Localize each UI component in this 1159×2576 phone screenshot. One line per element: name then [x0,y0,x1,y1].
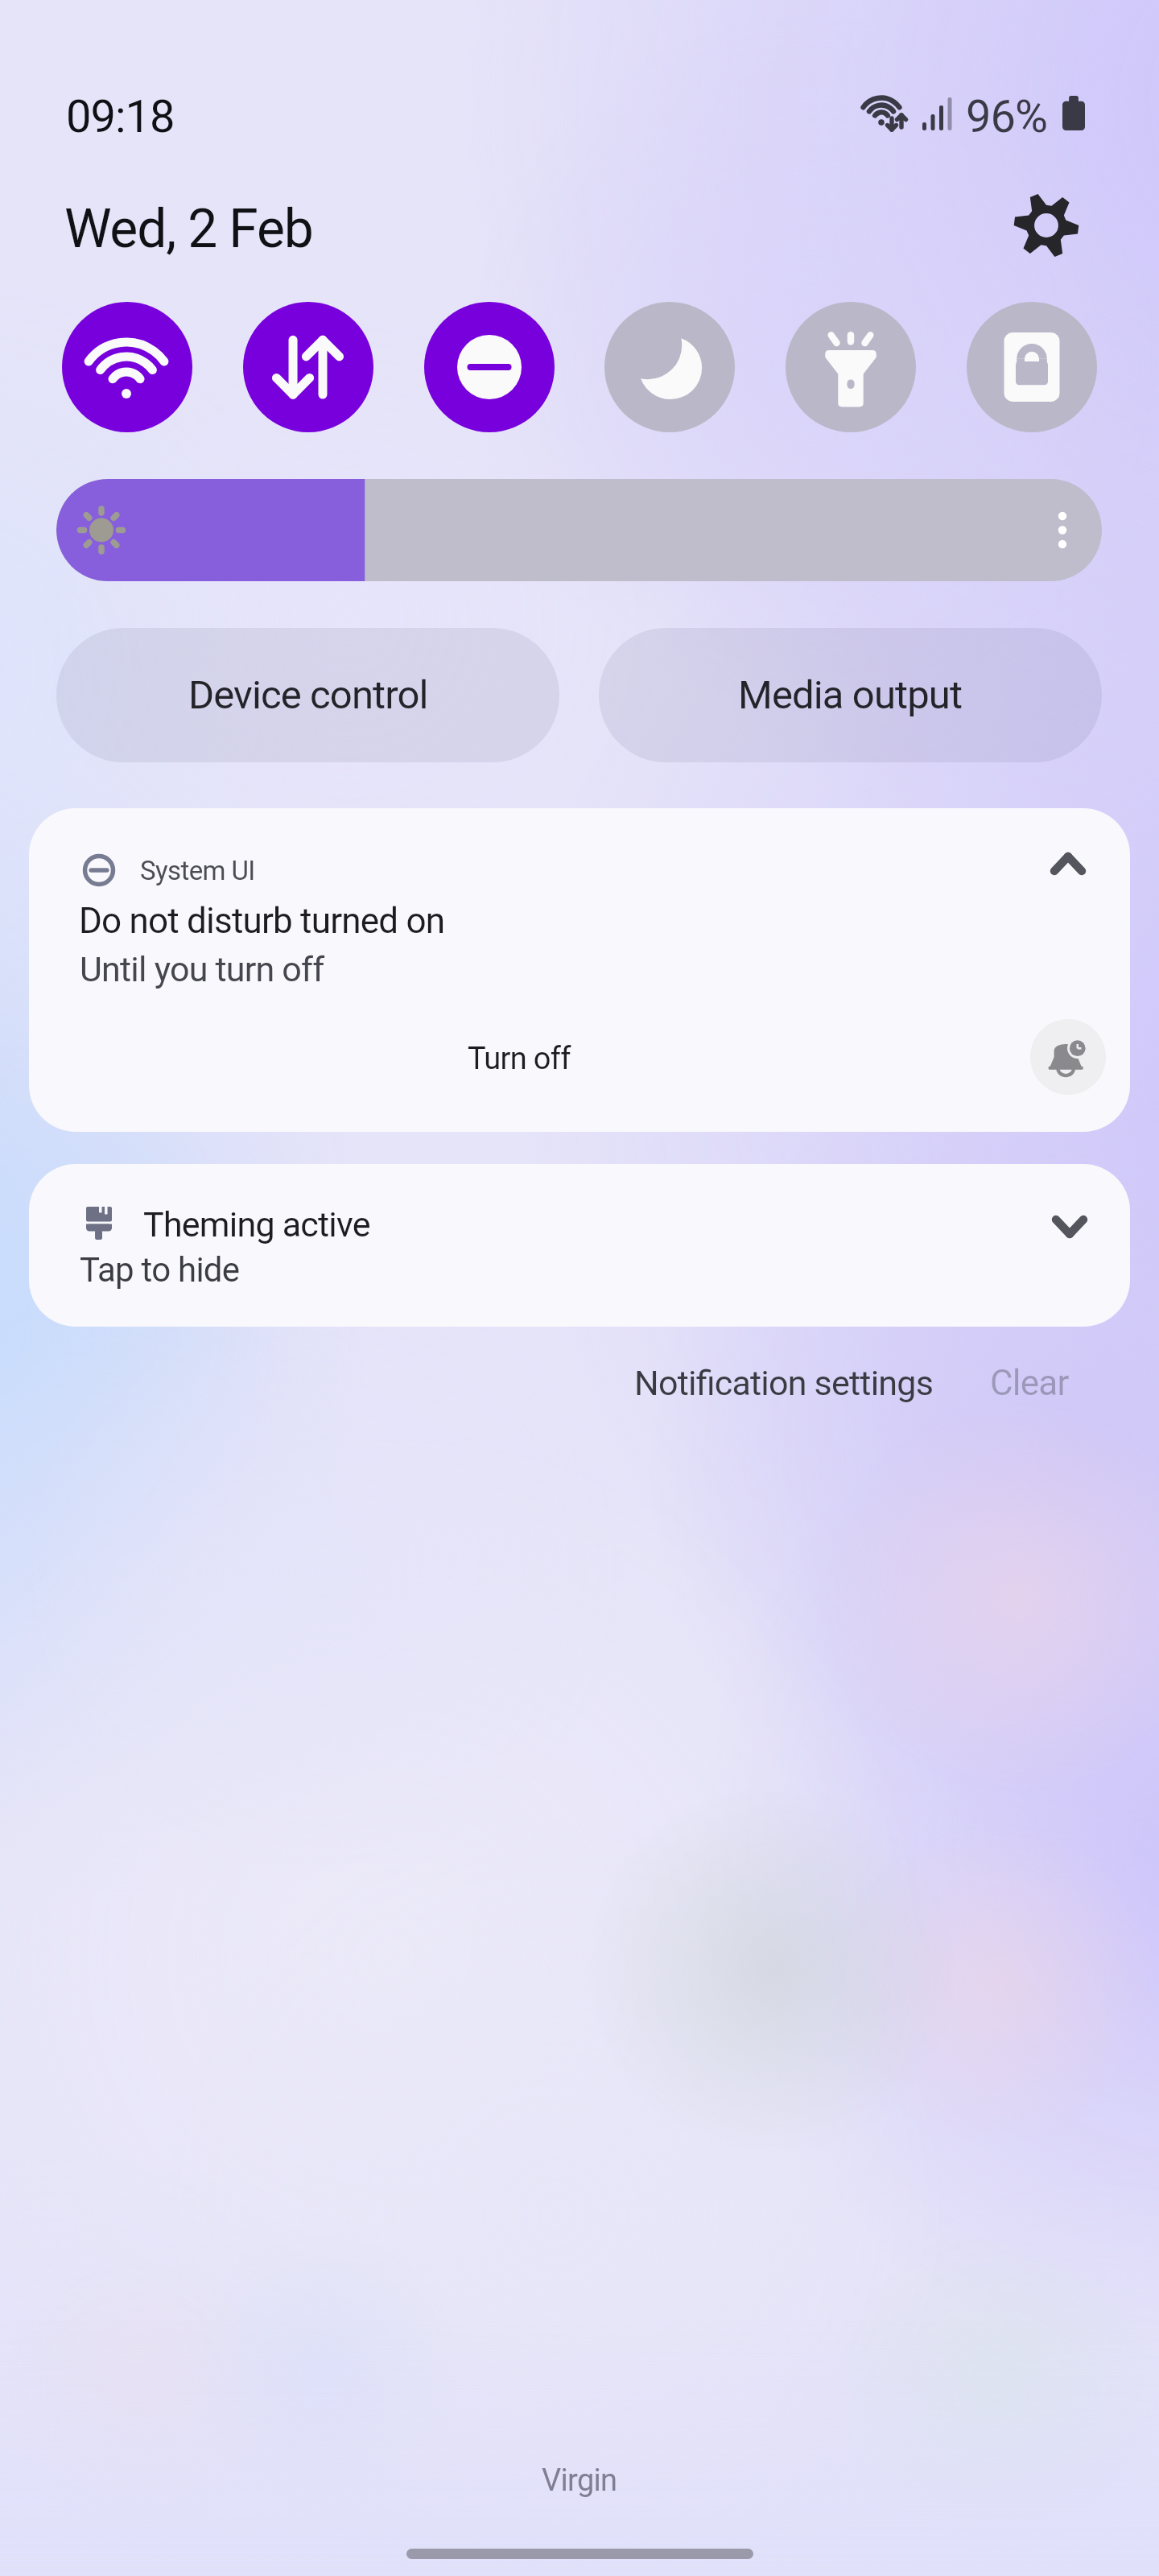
button[interactable]: Expand [1037,1195,1102,1259]
staticText: Do not disturb turned on [79,900,445,942]
button[interactable]: Media output [599,628,1102,762]
staticText: Clear [990,1362,1069,1404]
staticText: Turn off [468,1041,571,1077]
button[interactable]: Settings [1013,192,1080,259]
button[interactable]: Flashlight [786,302,916,432]
staticText: Theming active [143,1204,370,1245]
staticText: Notification settings [634,1363,934,1403]
button[interactable]: Screen lock [967,302,1097,432]
staticText: System UI [140,855,255,886]
staticText: 09:18 [66,90,175,143]
button[interactable]: Device control [56,628,559,762]
button[interactable]: Turn off [330,1012,708,1105]
staticText: Tap to hide [80,1250,240,1290]
button[interactable]: Theming active [29,1164,1130,1327]
button[interactable]: Do not disturb [424,302,555,432]
staticText: Device control [188,672,428,718]
button[interactable]: Wi-Fi [62,302,192,432]
staticText: Media output [738,672,963,718]
staticText: 96% [966,90,1047,143]
button[interactable]: Bedtime mode [604,302,735,432]
button[interactable]: Brightness [56,479,1102,581]
button[interactable]: Mobile data [243,302,373,432]
button[interactable]: Collapse [1036,832,1100,896]
staticText: Virgin [542,2462,617,2499]
button[interactable]: Snooze [1030,1019,1106,1095]
button[interactable]: System UI [29,808,1130,1132]
button[interactable]: Clear [967,1346,1091,1420]
staticText: Until you turn off [80,949,324,989]
button[interactable]: Notification settings [612,1347,956,1419]
staticText: Wed, 2 Feb [64,198,313,260]
